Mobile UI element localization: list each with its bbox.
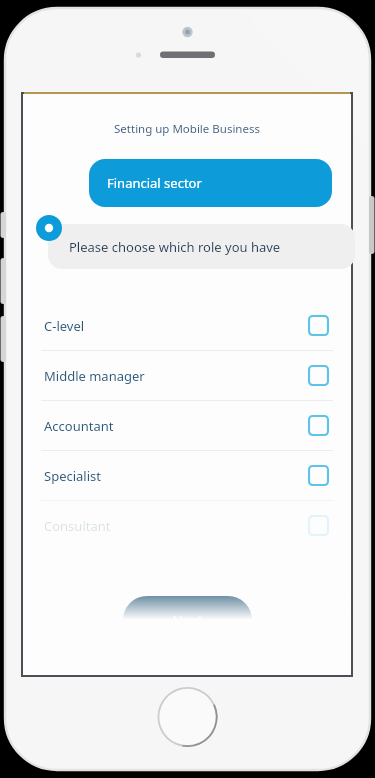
button[interactable]: Financial sector xyxy=(89,159,332,207)
button[interactable]: Middle manager xyxy=(23,351,351,400)
button[interactable]: Specialist xyxy=(23,451,351,500)
staticText: Specialist xyxy=(44,467,308,485)
other: Assistant avatar xyxy=(36,215,62,241)
staticText: Setting up Mobile Business xyxy=(23,121,351,137)
staticText: Consultant xyxy=(44,517,308,535)
staticText: Middle manager xyxy=(44,367,308,385)
staticText: Accountant xyxy=(44,417,308,435)
button[interactable]: Accountant xyxy=(23,401,351,450)
button[interactable]: C-level xyxy=(23,301,351,350)
staticText: Next xyxy=(172,611,203,630)
button[interactable]: Consultant xyxy=(23,501,351,550)
staticText: C-level xyxy=(44,317,308,335)
staticText: Please choose which role you have xyxy=(69,238,281,256)
staticText: Financial sector xyxy=(107,174,202,192)
button[interactable]: Next xyxy=(123,596,252,644)
